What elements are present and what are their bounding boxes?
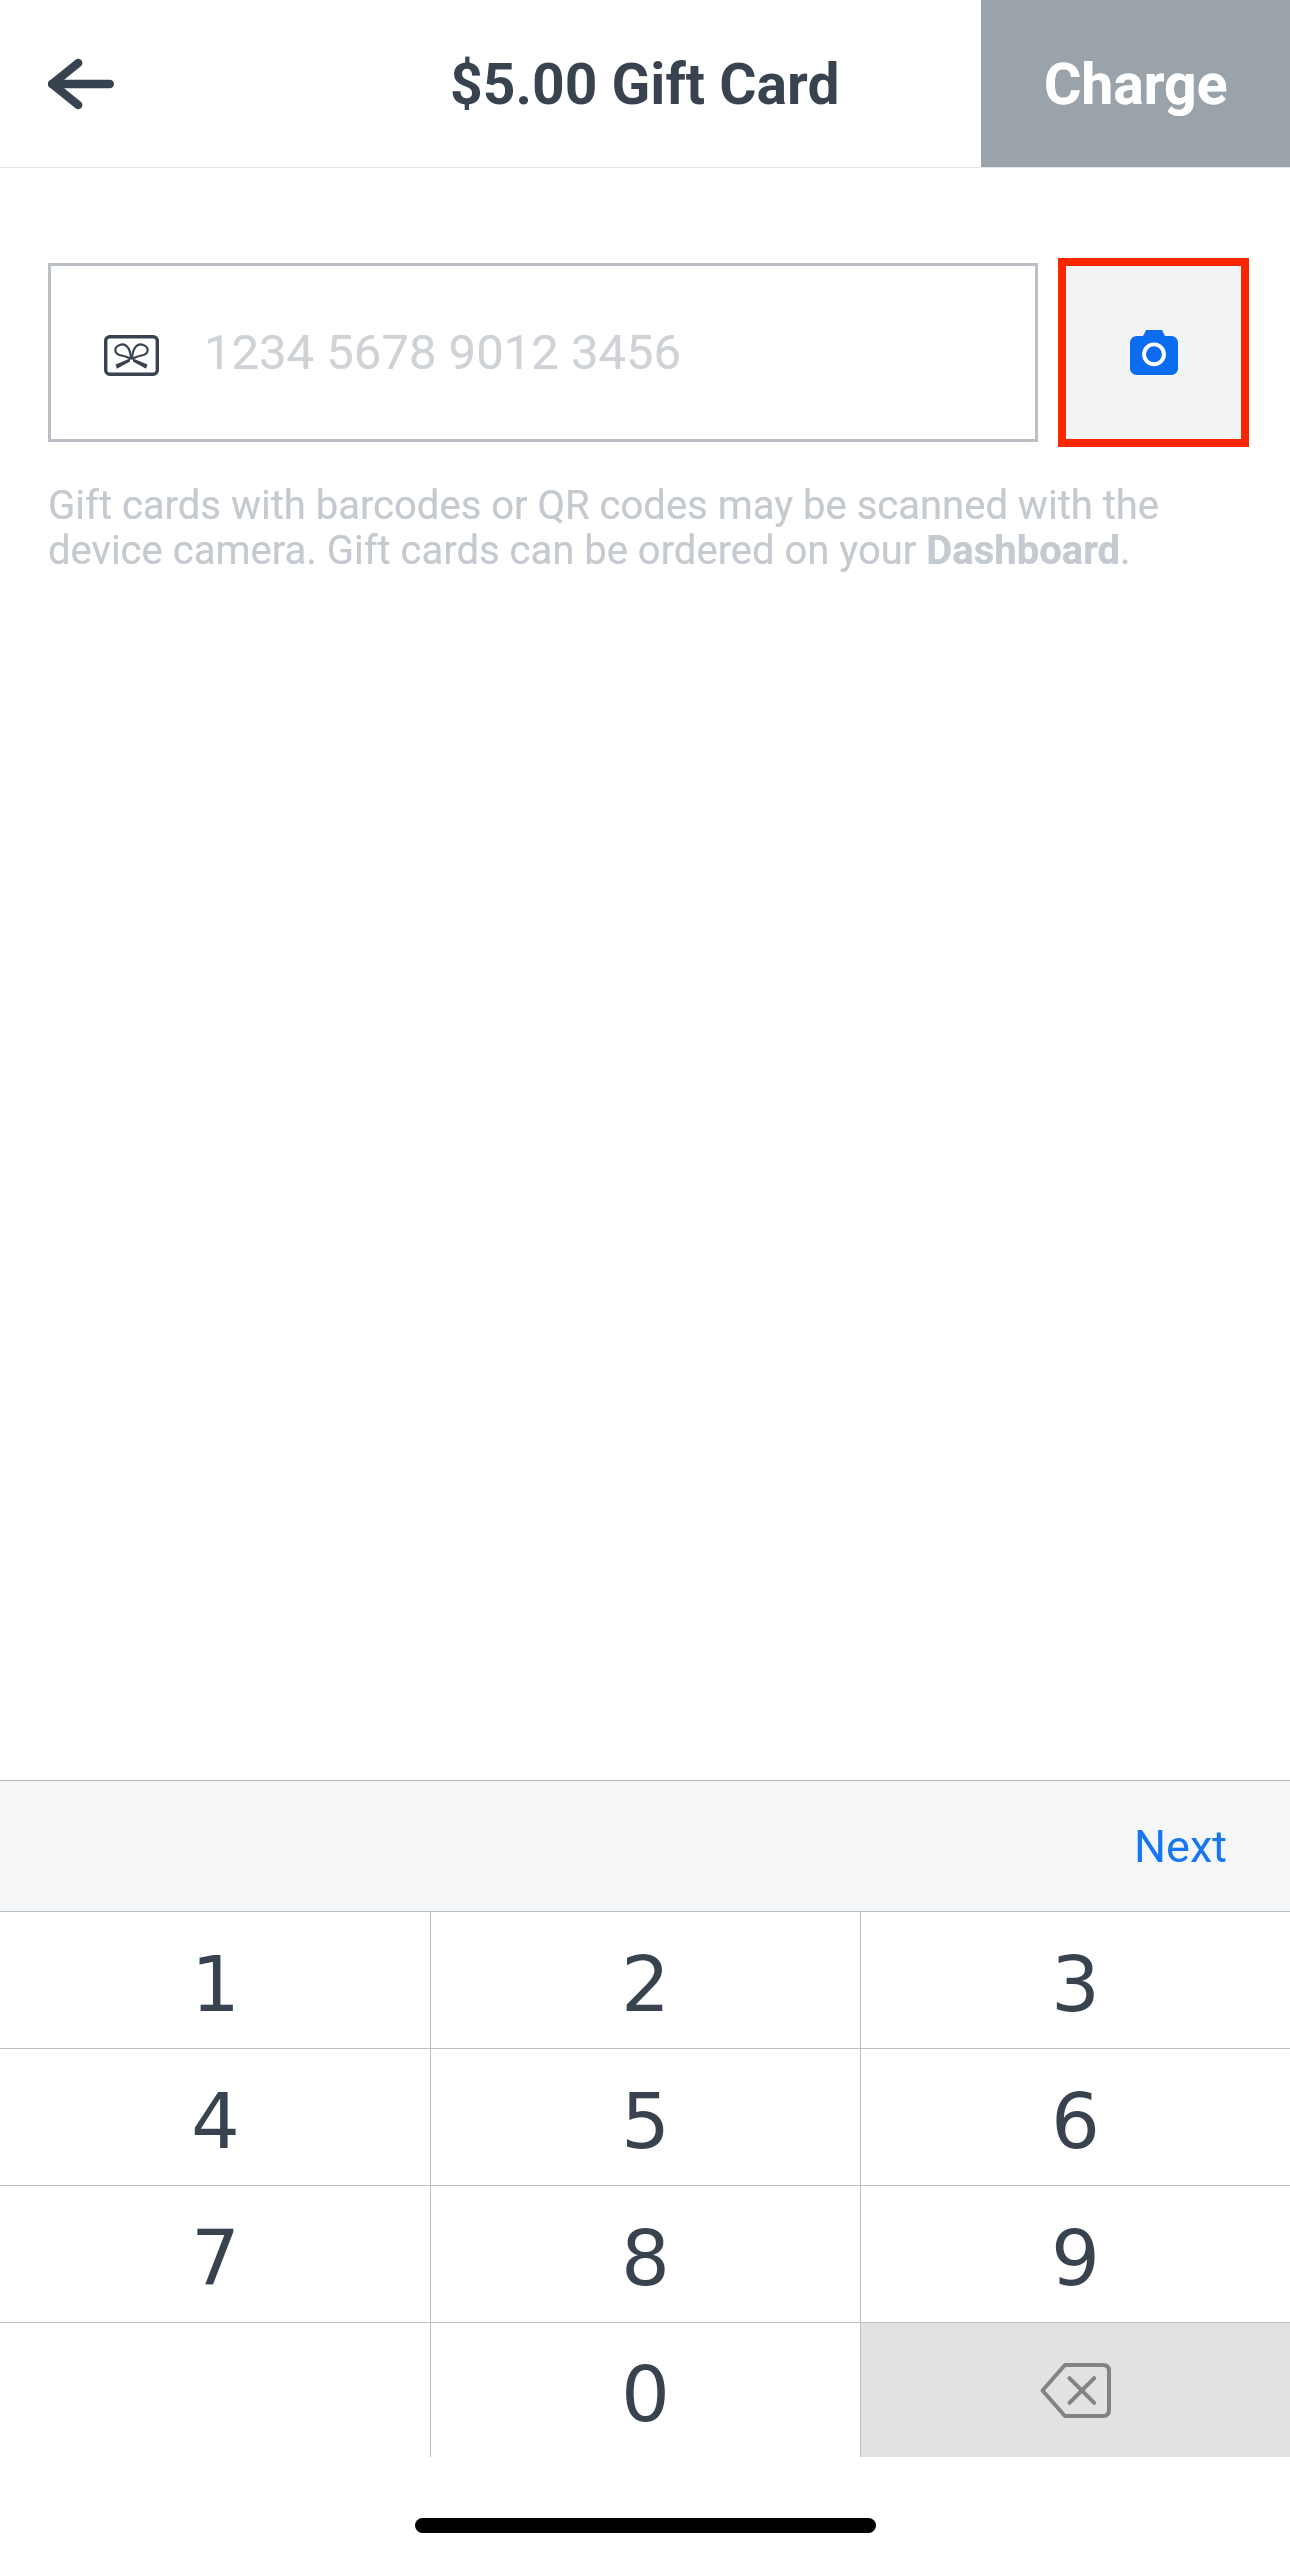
staticText: 6 bbox=[1051, 2077, 1100, 2167]
button[interactable]: 1234 5678 9012 3456 bbox=[48, 263, 1038, 442]
staticText: 4 bbox=[191, 2077, 240, 2167]
button[interactable]: 5 bbox=[430, 2049, 860, 2185]
other: Backspace bbox=[1039, 2363, 1111, 2418]
staticText: 1234 5678 9012 3456 bbox=[204, 324, 682, 381]
button[interactable]: Backspace bbox=[860, 2323, 1290, 2457]
staticText: 7 bbox=[191, 2214, 240, 2304]
button[interactable]: 7 bbox=[0, 2186, 430, 2322]
staticText: 1 bbox=[191, 1940, 240, 2030]
button[interactable]: 3 bbox=[860, 1912, 1290, 2048]
staticText: 3 bbox=[1051, 1940, 1100, 2030]
staticText: 8 bbox=[621, 2214, 670, 2304]
button[interactable]: 9 bbox=[860, 2186, 1290, 2322]
button[interactable]: Next bbox=[1134, 1820, 1228, 1873]
button[interactable]: 6 bbox=[860, 2049, 1290, 2185]
staticText: 9 bbox=[1051, 2214, 1100, 2304]
button[interactable]: 2 bbox=[430, 1912, 860, 2048]
button[interactable]: 0 bbox=[430, 2323, 860, 2457]
button[interactable]: Back bbox=[0, 0, 162, 168]
staticText: $5.00 Gift Card bbox=[450, 51, 840, 118]
button[interactable]: 4 bbox=[0, 2049, 430, 2185]
button[interactable]: 8 bbox=[430, 2186, 860, 2322]
button[interactable]: Charge bbox=[981, 0, 1290, 168]
staticText: 2 bbox=[621, 1940, 670, 2030]
button[interactable]: 1 bbox=[0, 1912, 430, 2048]
staticText: Next bbox=[1134, 1820, 1228, 1873]
button[interactable]: Scan gift card with camera bbox=[1058, 258, 1249, 447]
staticText: 0 bbox=[621, 2350, 670, 2440]
staticText: 5 bbox=[621, 2077, 670, 2167]
staticText: Charge bbox=[1044, 51, 1228, 118]
staticText: Gift cards with barcodes or QR codes may… bbox=[48, 482, 1190, 573]
